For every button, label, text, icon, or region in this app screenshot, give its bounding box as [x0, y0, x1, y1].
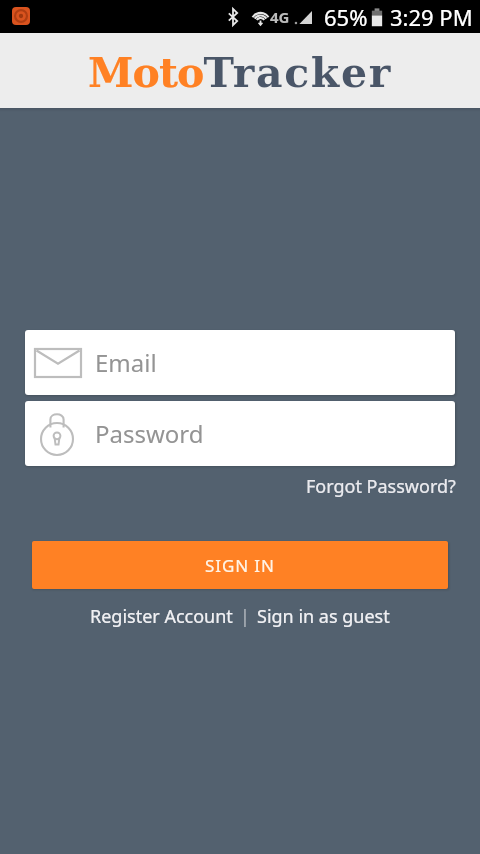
button[interactable]: Password: [25, 401, 455, 466]
staticText: Forgot Password?: [306, 474, 456, 499]
staticText: |: [240, 604, 250, 629]
other: Notification: [12, 7, 30, 25]
button[interactable]: Sign in as guest: [250, 600, 397, 633]
button[interactable]: Register Account: [83, 600, 240, 633]
button[interactable]: SIGN IN: [32, 541, 448, 589]
staticText: 3:29 PM: [390, 2, 473, 32]
staticText: Sign in as guest: [257, 604, 390, 629]
staticText: 4G: [270, 7, 290, 27]
staticText: Password: [95, 417, 204, 450]
staticText: Register Account: [90, 604, 233, 629]
staticText: SIGN IN: [205, 554, 275, 577]
button[interactable]: Email: [25, 330, 455, 395]
button[interactable]: Forgot Password?: [302, 470, 460, 503]
staticText: Email: [95, 346, 157, 379]
staticText: MotoTracker: [88, 49, 393, 97]
staticText: 65%: [324, 2, 368, 32]
